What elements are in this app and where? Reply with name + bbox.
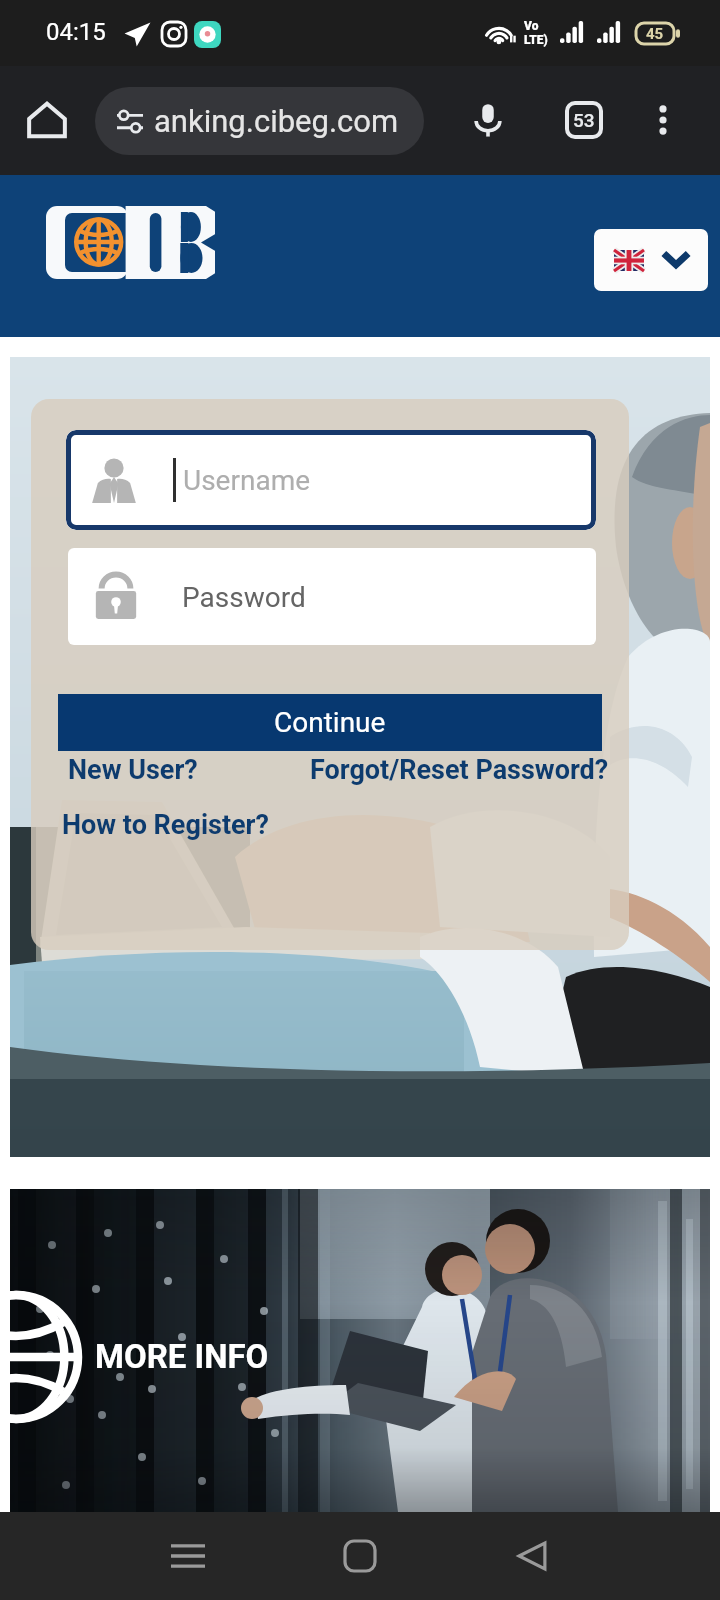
button[interactable]: Home: [16, 89, 78, 151]
staticText: 04:15: [46, 18, 106, 46]
staticText: anking.cibeg.com: [154, 103, 399, 139]
staticText: Username: [183, 464, 311, 497]
button[interactable]: More options: [632, 89, 694, 151]
button[interactable]: Continue: [58, 694, 602, 751]
staticText: Password: [182, 581, 306, 614]
button[interactable]: New User?: [68, 754, 198, 786]
staticText: 45: [646, 25, 664, 43]
button[interactable]: How to Register?: [62, 809, 269, 841]
button[interactable]: anking.cibeg.com: [95, 87, 424, 155]
button[interactable]: Password: [68, 548, 596, 645]
button[interactable]: Forgot/Reset Password?: [310, 754, 609, 786]
button[interactable]: Home: [330, 1526, 390, 1586]
staticText: Continue: [274, 706, 386, 739]
staticText: 53: [573, 109, 595, 131]
button[interactable]: MORE INFO: [95, 1337, 269, 1376]
button[interactable]: Username: [66, 430, 596, 530]
button[interactable]: Tabs: [553, 89, 615, 151]
staticText: LTE): [524, 33, 548, 47]
button[interactable]: Voice search: [457, 89, 519, 151]
button[interactable]: Recent apps: [158, 1526, 218, 1586]
button[interactable]: Back: [502, 1526, 562, 1586]
button[interactable]: Language selector: [594, 229, 708, 291]
staticText: Vo: [524, 19, 539, 33]
